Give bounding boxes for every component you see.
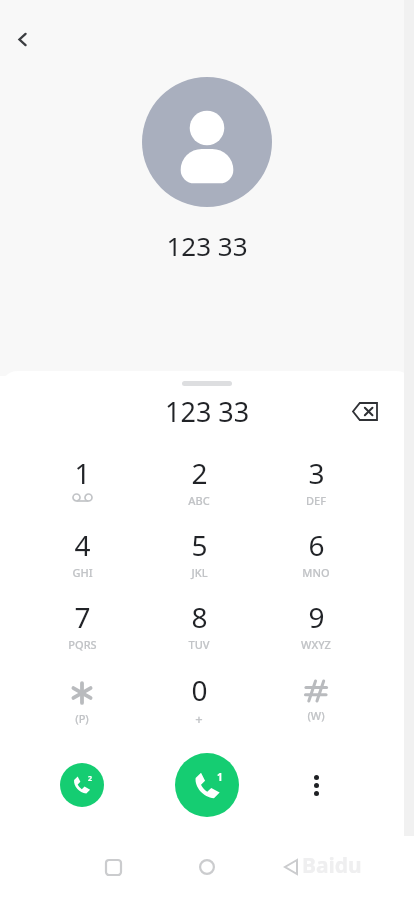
button[interactable]: 6 bbox=[268, 523, 364, 591]
staticText: 2 bbox=[191, 454, 208, 492]
button[interactable]: (P) bbox=[34, 668, 130, 736]
staticText: 8 bbox=[191, 598, 208, 636]
button[interactable]: Home bbox=[188, 848, 226, 886]
button[interactable]: 5 bbox=[151, 523, 247, 591]
staticText: 0 bbox=[191, 671, 208, 709]
staticText: Baidu bbox=[302, 851, 362, 880]
button[interactable]: Recents bbox=[94, 848, 132, 886]
button[interactable]: 0 bbox=[151, 668, 247, 736]
button[interactable]: 7 bbox=[34, 595, 130, 663]
staticText: 123 33 bbox=[165, 393, 250, 429]
button[interactable]: (W) bbox=[268, 668, 364, 736]
staticText: DEF bbox=[306, 493, 326, 508]
staticText: 123 33 bbox=[166, 228, 248, 263]
staticText: 9 bbox=[308, 598, 325, 636]
button[interactable]: Call with SIM 1 bbox=[175, 753, 239, 817]
staticText: (W) bbox=[307, 708, 325, 723]
button[interactable]: Back bbox=[272, 848, 310, 886]
staticText: 2 bbox=[88, 774, 93, 784]
staticText: (P) bbox=[75, 711, 89, 726]
button[interactable]: More options bbox=[295, 764, 337, 806]
staticText: 5 bbox=[191, 526, 208, 564]
staticText: 3 bbox=[308, 454, 325, 492]
button[interactable]: 9 bbox=[268, 595, 364, 663]
staticText: 1 bbox=[74, 454, 91, 492]
staticText: 7 bbox=[74, 598, 91, 636]
staticText: ABC bbox=[188, 493, 210, 508]
button[interactable]: Back bbox=[0, 17, 44, 61]
button[interactable]: Contact photo bbox=[142, 77, 272, 207]
staticText: 6 bbox=[308, 526, 325, 564]
staticText: GHI bbox=[72, 565, 93, 580]
button[interactable]: Call with SIM 2 bbox=[60, 763, 104, 807]
staticText: MNO bbox=[302, 565, 330, 580]
staticText: 1 bbox=[217, 770, 223, 784]
button[interactable]: 1 bbox=[34, 451, 130, 519]
button[interactable]: 8 bbox=[151, 595, 247, 663]
staticText: PQRS bbox=[68, 637, 97, 652]
button[interactable]: 2 bbox=[151, 451, 247, 519]
staticText: 4 bbox=[74, 526, 91, 564]
staticText: + bbox=[195, 710, 203, 728]
button[interactable]: Backspace bbox=[346, 393, 384, 429]
staticText: WXYZ bbox=[301, 637, 331, 652]
staticText: TUV bbox=[188, 637, 210, 652]
button[interactable]: 3 bbox=[268, 451, 364, 519]
staticText: JKL bbox=[191, 565, 208, 580]
button[interactable]: 4 bbox=[34, 523, 130, 591]
